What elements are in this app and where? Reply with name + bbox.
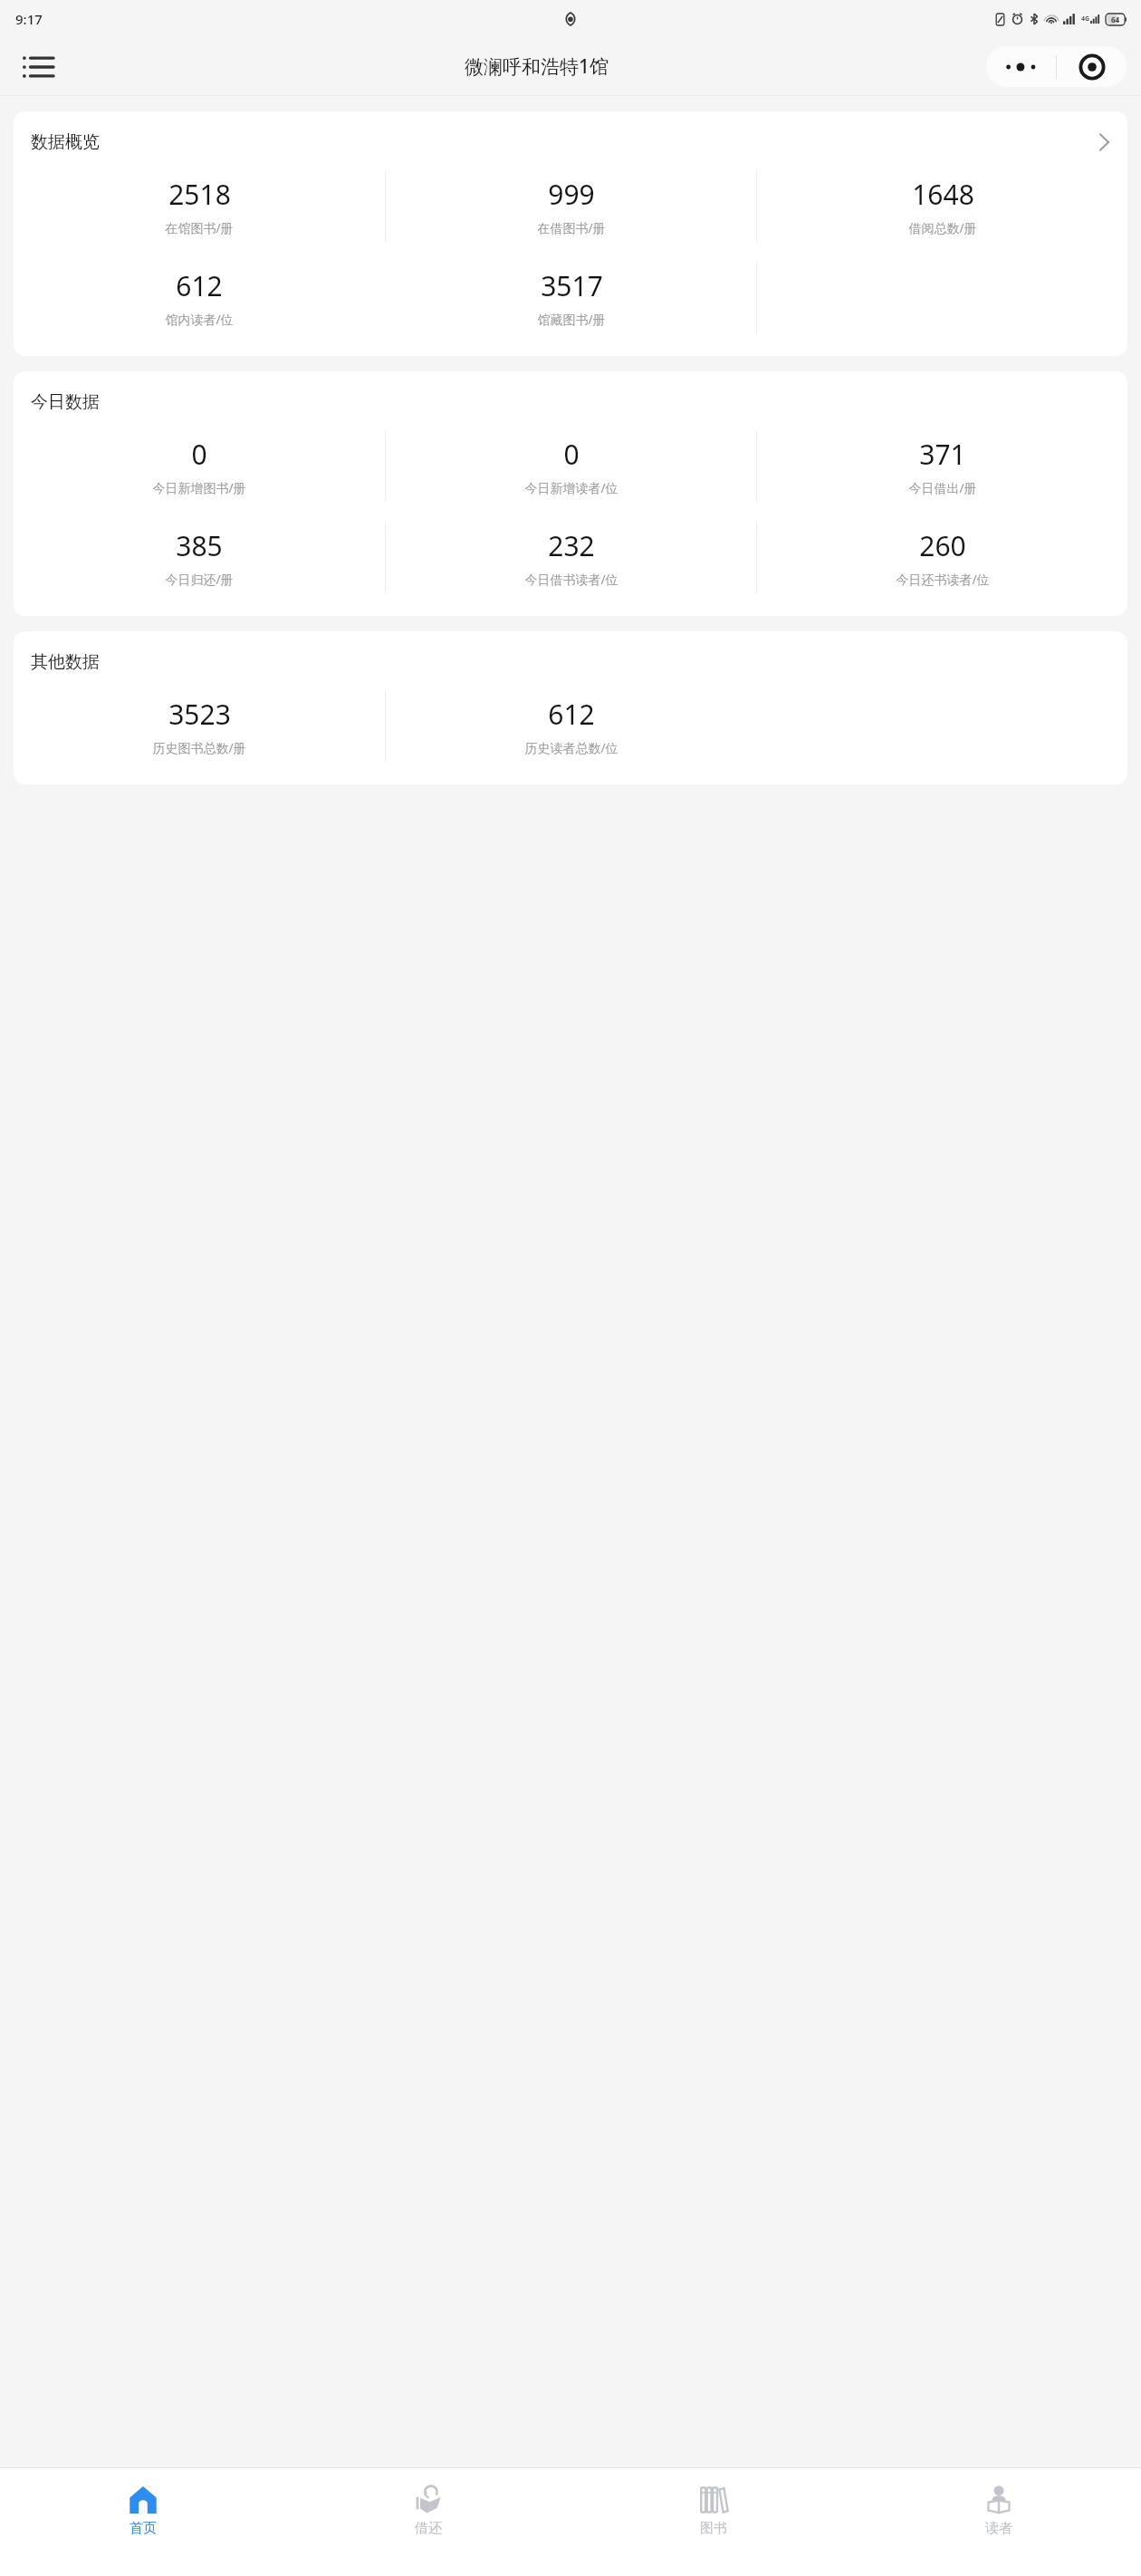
- button[interactable]: Menu: [18, 47, 58, 87]
- staticText: 今日借书读者/位: [524, 571, 618, 588]
- staticText: 0: [563, 436, 580, 473]
- staticText: 历史图书总数/册: [152, 739, 246, 756]
- staticText: 371: [919, 436, 966, 473]
- staticText: 借还: [415, 2520, 442, 2537]
- staticText: 历史读者总数/位: [524, 739, 618, 756]
- button[interactable]: Mini program menu: [986, 46, 1127, 87]
- staticText: 612: [176, 267, 223, 304]
- staticText: 0: [191, 436, 207, 473]
- button[interactable]: 数据概览: [14, 111, 1127, 356]
- staticText: 微澜呼和浩特1馆: [465, 53, 609, 80]
- staticText: 9:17: [15, 10, 43, 28]
- staticText: 今日借出/册: [908, 479, 977, 496]
- staticText: 4G: [1081, 14, 1090, 24]
- button[interactable]: 首页: [0, 2468, 285, 2553]
- staticText: 今日新增读者/位: [524, 479, 618, 496]
- staticText: 1648: [912, 176, 974, 213]
- staticText: 2518: [168, 176, 231, 213]
- staticText: 馆内读者/位: [165, 311, 234, 328]
- button[interactable]: 今日数据: [14, 371, 1127, 616]
- staticText: 其他数据: [31, 651, 100, 673]
- staticText: 今日新增图书/册: [152, 479, 246, 496]
- button[interactable]: 图书: [570, 2468, 856, 2553]
- staticText: 读者: [985, 2520, 1012, 2537]
- staticText: 馆藏图书/册: [537, 311, 606, 328]
- button[interactable]: 读者: [856, 2468, 1141, 2553]
- staticText: 今日还书读者/位: [896, 571, 990, 588]
- staticText: 385: [176, 527, 223, 564]
- staticText: 在借图书/册: [537, 219, 606, 236]
- staticText: 232: [548, 527, 595, 564]
- staticText: 260: [919, 527, 966, 564]
- staticText: 数据概览: [31, 131, 100, 153]
- staticText: 64: [1111, 14, 1120, 24]
- staticText: 借阅总数/册: [908, 219, 977, 236]
- staticText: 今日归还/册: [165, 571, 234, 588]
- staticText: 999: [548, 176, 595, 213]
- staticText: 在馆图书/册: [165, 219, 234, 236]
- staticText: 3523: [168, 696, 231, 733]
- button[interactable]: 其他数据: [14, 631, 1127, 784]
- staticText: 首页: [129, 2520, 157, 2537]
- staticText: 3517: [541, 267, 603, 304]
- staticText: 今日数据: [31, 391, 100, 413]
- staticText: 图书: [700, 2520, 727, 2537]
- button[interactable]: 借还: [285, 2468, 570, 2553]
- staticText: 612: [548, 696, 595, 733]
